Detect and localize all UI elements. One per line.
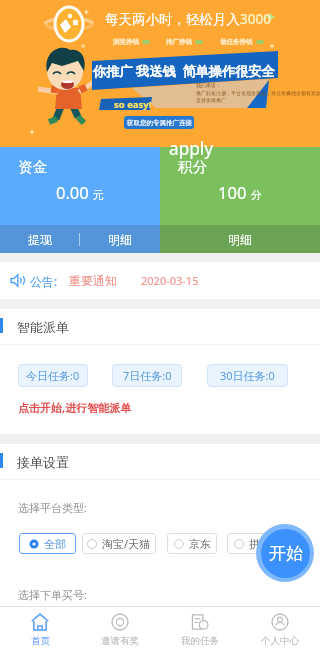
staticText: 选择平台类型:	[18, 500, 87, 515]
staticText: 首页	[31, 635, 50, 647]
staticText: 我的任务	[181, 635, 219, 647]
staticText: 个人中心	[261, 635, 299, 647]
staticText: 点击开始,进行智能派单	[18, 400, 132, 415]
staticText: 淘宝/天猫	[102, 536, 151, 551]
staticText: 京东	[189, 537, 211, 551]
staticText: 每天两小时，轻松月入	[105, 11, 240, 28]
staticText: apply	[169, 137, 213, 160]
staticText: 100	[218, 181, 247, 203]
button[interactable]: 邀请有奖	[80, 607, 160, 653]
staticText: 接单设置	[17, 454, 69, 470]
staticText: so easy!	[114, 98, 152, 111]
button[interactable]: 开始	[256, 524, 314, 582]
button[interactable]: 个人中心	[240, 607, 320, 653]
button[interactable]: 明细	[80, 225, 160, 253]
staticText: 推广好友注册，平台送现金奖励，发任务赚佣金都有奖励	[196, 90, 320, 96]
staticText: 获取您的专属推广连接	[127, 119, 192, 127]
staticText: 积分	[178, 158, 208, 176]
button[interactable]: 首页	[0, 607, 80, 653]
button[interactable]: 拼多多	[227, 533, 289, 554]
staticText: 3000	[240, 10, 271, 28]
button[interactable]: 淘宝/天猫	[82, 533, 156, 554]
staticText: 你推广 我送钱 简单操作很安全	[93, 62, 275, 80]
staticText: 选择下单买号:	[18, 587, 87, 602]
staticText: 我们承诺：	[196, 82, 221, 88]
button[interactable]: 全部	[19, 533, 76, 554]
staticText: 邀请有奖	[101, 635, 139, 647]
staticText: 2020-03-15	[141, 273, 199, 288]
staticText: 明细	[108, 232, 132, 247]
staticText: 做任务挣钱	[220, 38, 253, 46]
staticText: 开始	[269, 543, 303, 564]
staticText: 30日任务:0	[220, 368, 275, 383]
staticText: 资金	[18, 158, 48, 176]
button[interactable]: 7日任务:0	[112, 364, 182, 387]
staticText: 提现	[28, 232, 52, 247]
staticText: 元	[93, 188, 104, 202]
staticText: 7日任务:0	[123, 368, 172, 383]
button[interactable]: 京东	[167, 533, 217, 554]
staticText: 重要通知	[69, 273, 117, 288]
button[interactable]: 我的任务	[160, 607, 240, 653]
staticText: 公告:	[30, 273, 58, 289]
staticText: 分	[251, 188, 262, 202]
staticText: 拼多多	[249, 537, 282, 551]
button[interactable]: 今日任务:0	[18, 364, 88, 387]
staticText: 推广挣钱	[166, 38, 192, 46]
staticText: 智能派单	[17, 319, 69, 335]
staticText: 全部	[44, 537, 66, 551]
button[interactable]: 获取您的专属推广连接	[124, 116, 194, 129]
button[interactable]: 30日任务:0	[207, 364, 288, 387]
staticText: 今日任务:0	[26, 368, 80, 383]
staticText: 明细	[228, 232, 252, 247]
staticText: 浏览挣钱	[113, 38, 139, 46]
staticText: 支持多级推广	[196, 97, 226, 103]
staticText: 0.00	[56, 181, 89, 203]
button[interactable]: 明细	[160, 225, 320, 253]
button[interactable]: 公告:	[0, 262, 320, 299]
button[interactable]: 提现	[0, 225, 79, 253]
